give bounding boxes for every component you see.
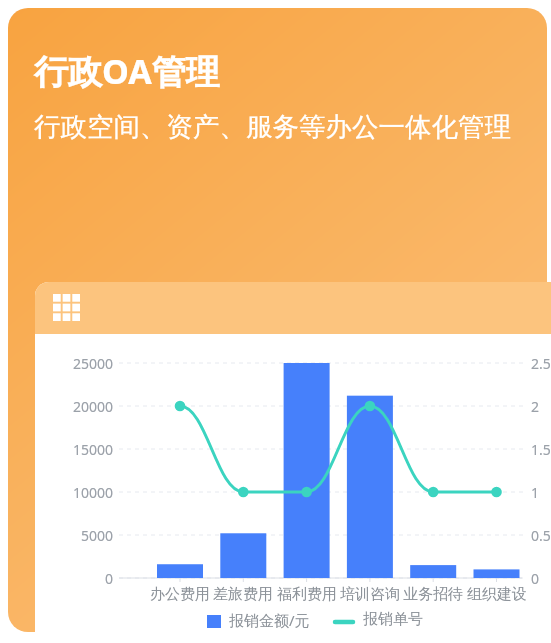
staticText: 差旅费用	[209, 585, 277, 604]
staticText: 组织建设	[463, 585, 531, 604]
staticText: 2	[531, 397, 540, 416]
staticText: 5000	[35, 526, 113, 545]
staticText: 0.5	[531, 526, 551, 545]
staticText: 0	[35, 569, 113, 588]
staticText: 10000	[35, 483, 113, 502]
staticText: 25000	[35, 354, 113, 373]
staticText: 1	[531, 483, 540, 502]
staticText: 15000	[35, 440, 113, 459]
staticText: 报销单号	[363, 610, 423, 629]
button[interactable]: Apps menu	[53, 294, 80, 321]
staticText: 业务招待	[399, 585, 467, 604]
staticText: 福利费用	[273, 585, 341, 604]
staticText: 1.5	[531, 440, 551, 459]
staticText: 培训咨询	[336, 585, 404, 604]
staticText: 行政OA管理	[34, 48, 220, 94]
staticText: 20000	[35, 397, 113, 416]
button[interactable]: Apps menu	[35, 282, 551, 643]
staticText: 行政空间、资产、服务等办公一体化管理	[34, 110, 511, 143]
staticText: 报销金额/元	[229, 610, 310, 630]
staticText: 2.5	[531, 354, 551, 373]
staticText: 办公费用	[146, 585, 214, 604]
staticText: 0	[531, 569, 540, 588]
button[interactable]: 行政OA管理	[8, 8, 547, 632]
